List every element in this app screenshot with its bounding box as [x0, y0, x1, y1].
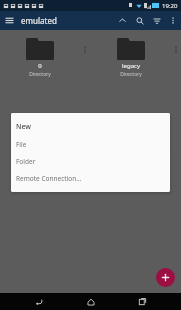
staticText: Directory	[120, 71, 142, 78]
button[interactable]: Back	[27, 293, 51, 310]
staticText: 19:20	[162, 2, 178, 10]
staticText: Remote Connection...	[16, 174, 82, 183]
button[interactable]: File	[11, 136, 170, 153]
staticText: File	[16, 140, 27, 149]
button[interactable]: legacy	[90, 34, 181, 81]
staticText: legacy	[122, 62, 140, 70]
button[interactable]: Recent apps	[130, 293, 154, 310]
button[interactable]: Search	[131, 12, 148, 29]
button[interactable]: Open navigation drawer	[0, 11, 19, 30]
button[interactable]: Go up	[114, 12, 131, 29]
button[interactable]: Remote Connection...	[11, 170, 170, 187]
staticText: emulated	[21, 15, 57, 26]
button[interactable]: Item options for 0	[80, 43, 90, 55]
staticText: 0	[38, 62, 42, 70]
button[interactable]: New	[11, 118, 170, 136]
button[interactable]: Folder	[11, 153, 170, 170]
button[interactable]: 0	[0, 34, 90, 81]
staticText: New	[16, 122, 31, 132]
staticText: Folder	[16, 157, 36, 166]
button[interactable]: Add	[156, 268, 175, 287]
staticText: Directory	[29, 71, 51, 78]
button[interactable]: More options	[165, 13, 180, 28]
button[interactable]: Home	[79, 293, 103, 310]
button[interactable]: Item options for legacy	[171, 43, 181, 55]
button[interactable]: Sort	[148, 12, 165, 29]
